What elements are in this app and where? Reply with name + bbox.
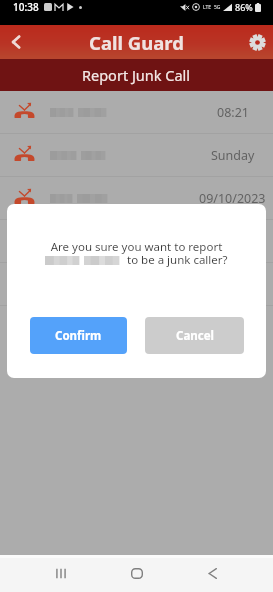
- button[interactable]: 08/10/2023: [0, 220, 273, 262]
- staticText: Call Guard: [89, 30, 184, 55]
- button[interactable]: Sunday: [0, 134, 273, 176]
- staticText: 08:21: [217, 104, 249, 121]
- staticText: 08/10/2023: [199, 233, 266, 250]
- staticText: 09/10/2023: [199, 190, 266, 207]
- staticText: Report Junk Call: [82, 65, 191, 85]
- staticText: 10:38: [13, 0, 39, 14]
- button[interactable]: 09/10/2023: [0, 177, 273, 219]
- button[interactable]: Confirm: [30, 317, 127, 354]
- staticText: Are you sure you want to report: [7, 239, 266, 255]
- button[interactable]: Settings: [241, 25, 273, 59]
- staticText: Cancel: [176, 328, 214, 344]
- button[interactable]: Back: [0, 25, 32, 59]
- button[interactable]: Home: [131, 558, 143, 592]
- button[interactable]: Cancel: [145, 317, 244, 354]
- button[interactable]: Recent apps: [55, 558, 67, 592]
- button[interactable]: Back: [207, 558, 219, 592]
- staticText: Confirm: [55, 328, 102, 344]
- staticText: 5G: [214, 4, 221, 11]
- button[interactable]: 07/10/2023: [0, 263, 273, 305]
- staticText: LTE: [203, 4, 212, 11]
- button[interactable]: 08:21: [0, 91, 273, 133]
- staticText: 86%: [235, 1, 253, 13]
- staticText: to be a junk caller?: [127, 252, 228, 268]
- staticText: Sunday: [211, 147, 255, 164]
